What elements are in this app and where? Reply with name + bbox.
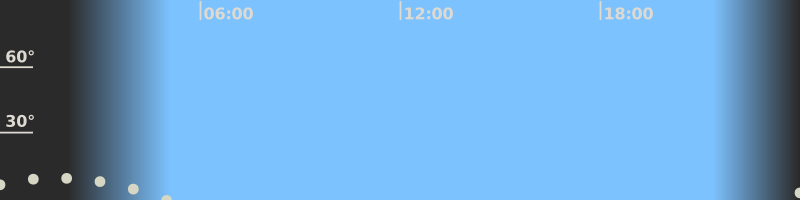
staticText: 18:00 xyxy=(603,4,653,23)
staticText: 06:00 xyxy=(203,4,253,23)
staticText: 30° xyxy=(5,112,35,130)
staticText: 60° xyxy=(5,48,35,66)
staticText: 12:00 xyxy=(403,4,453,23)
